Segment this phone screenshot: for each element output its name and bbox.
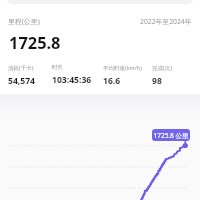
staticText: 1725.8 xyxy=(9,31,61,53)
staticText: 2022年至2024年 xyxy=(140,17,192,26)
staticText: 98 xyxy=(152,75,162,87)
staticText: 里程(公里) xyxy=(8,17,40,26)
staticText: 平均时速(km/h) xyxy=(103,64,142,72)
button[interactable]: 消耗(千卡) xyxy=(8,64,36,87)
staticText: 消耗(千卡) xyxy=(8,64,34,72)
staticText: 1725.8 公里 xyxy=(153,131,189,140)
button[interactable]: 完成(次) xyxy=(152,64,172,87)
button[interactable]: 1725.8 公里 xyxy=(152,129,190,141)
staticText: 16.6 xyxy=(103,75,121,87)
staticText: 54,574 xyxy=(8,75,36,87)
staticText: 完成(次) xyxy=(152,64,172,72)
button[interactable]: 时长 xyxy=(52,64,92,86)
staticText: 103:45:36 xyxy=(52,74,92,86)
staticText: 时长 xyxy=(52,64,63,71)
button[interactable]: 平均时速(km/h) xyxy=(103,64,142,87)
